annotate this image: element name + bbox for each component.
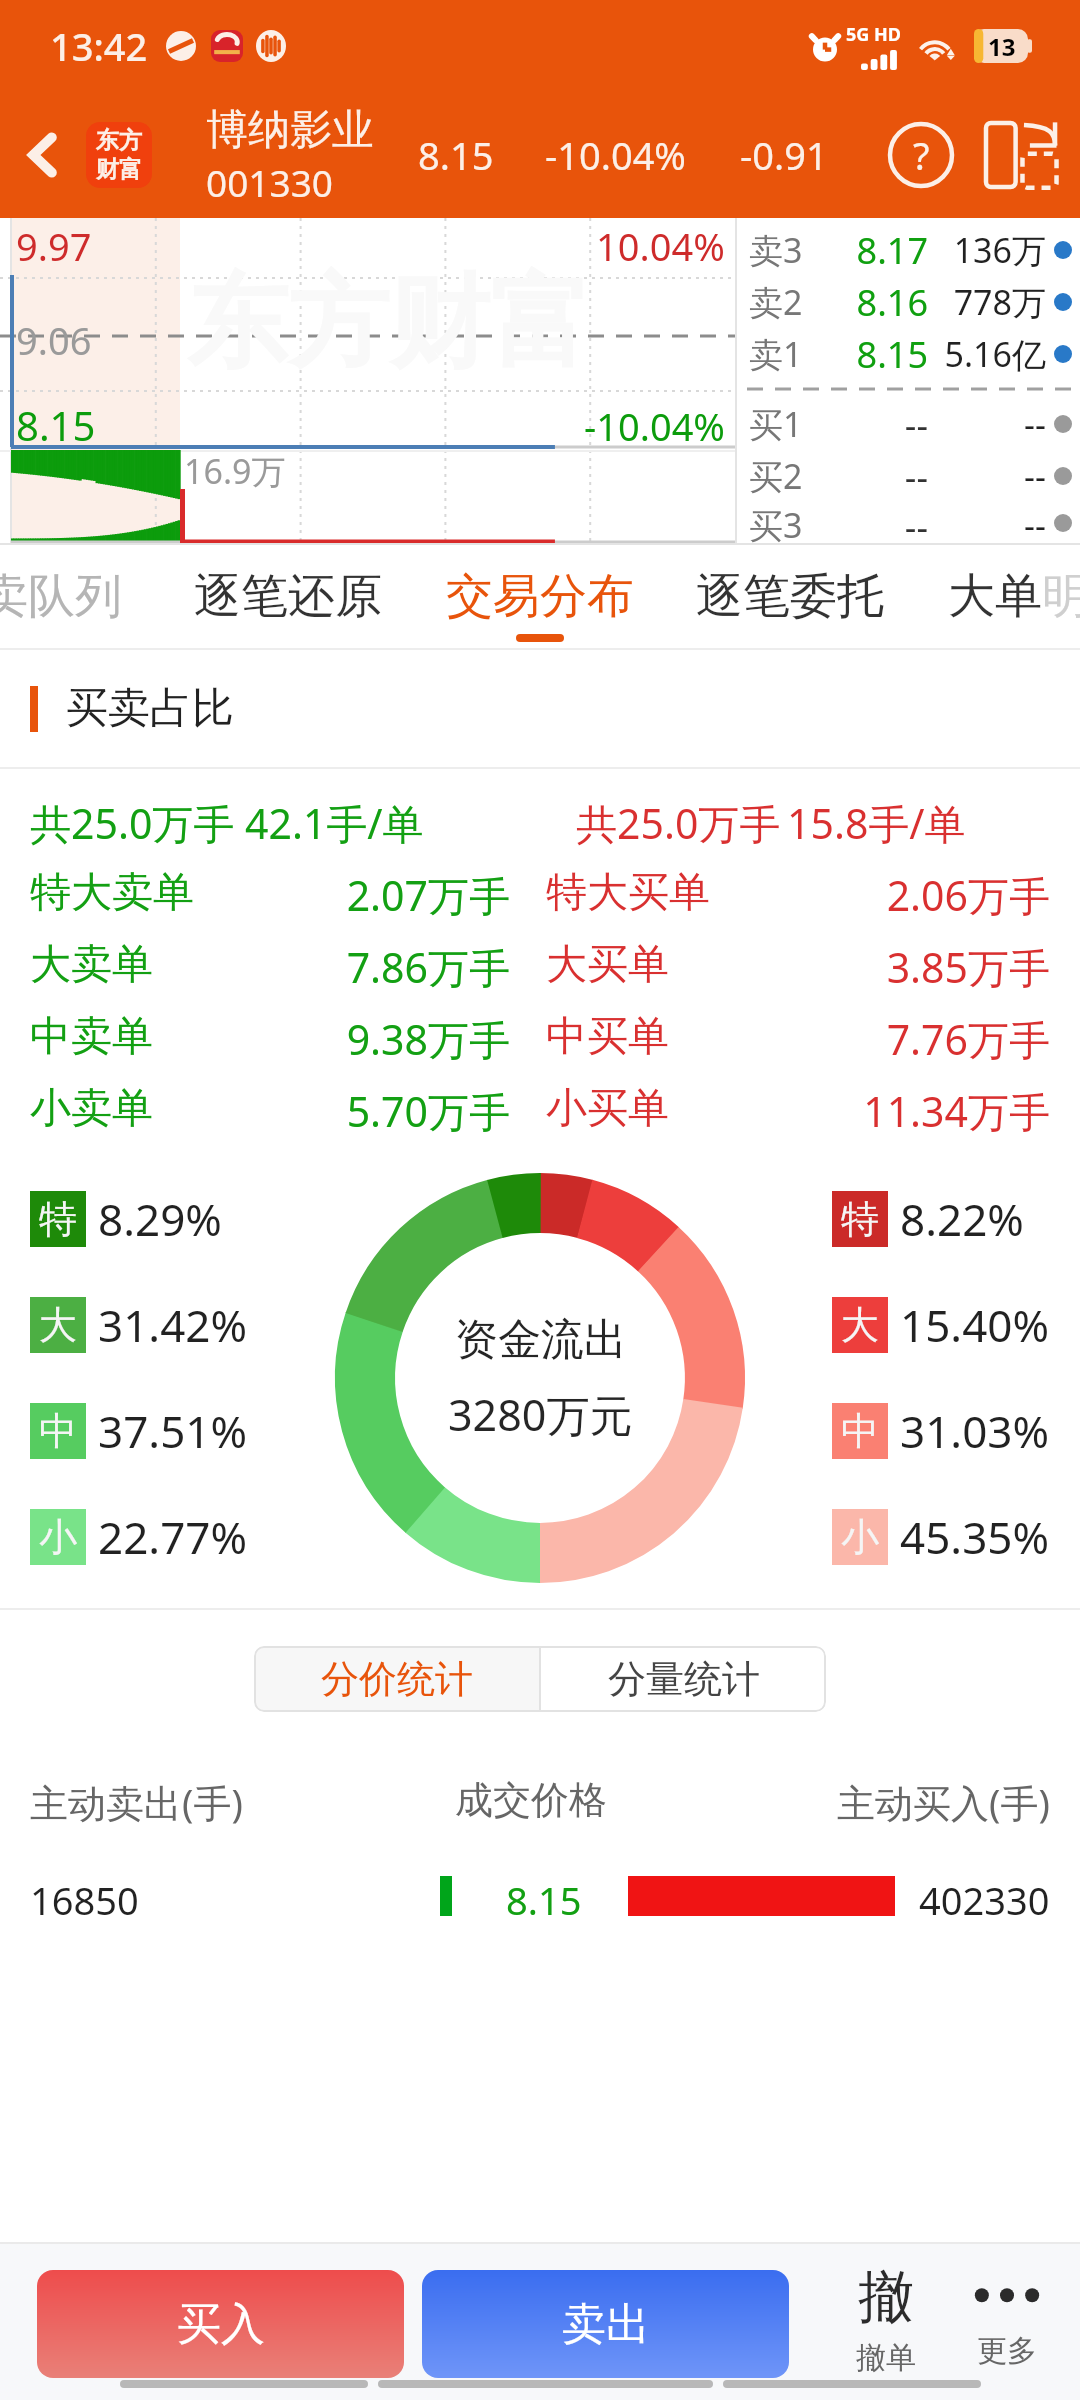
staticText: 8.15 [506, 1874, 582, 1918]
button[interactable]: Help [874, 92, 968, 218]
staticText: 8.16 [803, 278, 928, 327]
staticText: 撤单 [856, 2339, 916, 2377]
staticText: 东方 [96, 126, 142, 155]
staticText: -- [803, 452, 928, 501]
staticText: 大买单 [546, 939, 669, 991]
staticText: -- [803, 502, 928, 543]
staticText: 大单 [948, 567, 1042, 626]
staticText: 买3 [749, 502, 803, 543]
staticText: 小 [841, 1513, 879, 1561]
staticText: 45.35% [900, 1507, 1050, 1567]
staticText: 特大买单 [546, 867, 710, 919]
staticText: 8.15 [418, 129, 545, 181]
staticText: 大卖单 [30, 939, 153, 991]
staticText: 16.9万 [184, 448, 286, 494]
staticText: 共25.0万手 [576, 795, 781, 851]
staticText: 分量统计 [608, 1655, 760, 1703]
button[interactable]: 分量统计 [541, 1646, 826, 1712]
staticText: 001330 [206, 157, 333, 207]
staticText: 特 [841, 1195, 879, 1243]
staticText: 更多 [977, 2332, 1037, 2370]
staticText: 共25.0万手 [30, 795, 235, 851]
staticText: 3.85万手 [669, 939, 1050, 995]
staticText: 15.8手/单 [787, 795, 966, 851]
staticText: 买2 [749, 453, 803, 499]
staticText: 卖3 [749, 227, 803, 273]
staticText: 13 [988, 30, 1016, 63]
staticText: 7.76万手 [669, 1011, 1050, 1067]
staticText: 8.17 [803, 226, 928, 275]
staticText: 买1 [749, 401, 803, 447]
staticText: 中 [841, 1407, 879, 1455]
button[interactable]: More [948, 2262, 1066, 2370]
staticText: 逐笔委托 [696, 567, 884, 626]
staticText: 22.77% [98, 1507, 248, 1567]
staticText: 5G HD [846, 22, 916, 47]
staticText: 8.15 [803, 330, 928, 379]
staticText: 3280万元 [448, 1385, 633, 1444]
button[interactable]: Back [0, 92, 86, 218]
staticText: 42.1手/单 [245, 795, 424, 851]
staticText: -10.04% [584, 400, 725, 452]
staticText: 31.03% [900, 1401, 1050, 1461]
staticText: 8.22% [900, 1189, 1024, 1249]
button[interactable]: 大单 [948, 545, 1080, 648]
staticText: 大 [39, 1301, 77, 1349]
staticText: -10.04% [545, 129, 740, 181]
staticText: 7.86万手 [153, 939, 510, 995]
staticText: 5.16亿 [934, 331, 1046, 377]
button[interactable]: 卖队列 [0, 545, 146, 648]
staticText: 778万 [934, 279, 1046, 325]
staticText: 15.40% [900, 1295, 1050, 1355]
staticText: 小买单 [546, 1083, 669, 1135]
staticText: 8.29% [98, 1189, 222, 1249]
staticText: 11.34万手 [669, 1083, 1050, 1139]
staticText: 卖2 [749, 279, 803, 325]
staticText: -0.91 [740, 129, 828, 181]
staticText: 买卖占比 [66, 682, 234, 735]
button[interactable]: 逐笔还原 [178, 545, 398, 648]
staticText: -- [934, 401, 1046, 447]
staticText: 9.97 [16, 220, 92, 272]
staticText: 卖1 [749, 331, 803, 377]
staticText: 特 [39, 1195, 77, 1243]
staticText: 31.42% [98, 1295, 248, 1355]
button[interactable]: 交易分布 [430, 545, 650, 648]
staticText: 成交价格 [455, 1776, 607, 1824]
staticText: 10.04% [596, 220, 725, 272]
staticText: 东方财富 [187, 260, 591, 387]
staticText: 明 [1042, 567, 1080, 626]
staticText: 博纳影业 [206, 104, 374, 157]
button[interactable]: 逐笔委托 [680, 545, 900, 648]
staticText: 买入 [177, 2297, 265, 2352]
staticText: 13:42 [50, 20, 148, 72]
staticText: 分价统计 [321, 1655, 473, 1703]
staticText: 主动卖出(手) [30, 1776, 243, 1824]
staticText: 136万 [934, 227, 1046, 273]
staticText: 卖出 [562, 2297, 650, 2352]
button[interactable]: 买入 [37, 2270, 404, 2378]
staticText: 402330 [919, 1874, 1050, 1918]
staticText: 小 [39, 1513, 77, 1561]
staticText: 5.70万手 [153, 1083, 510, 1139]
staticText: 财富 [96, 155, 142, 184]
staticText: 交易分布 [446, 567, 634, 626]
staticText: 大 [841, 1301, 879, 1349]
staticText: 9.38万手 [153, 1011, 510, 1067]
staticText: 撤 [858, 2262, 914, 2333]
staticText: 8.15 [16, 398, 96, 452]
staticText: 特大卖单 [30, 867, 194, 919]
staticText: 资金流出 [455, 1313, 627, 1367]
button[interactable]: 卖出 [422, 2270, 789, 2378]
staticText: 2.06万手 [710, 867, 1050, 923]
button[interactable]: Multi window [968, 92, 1074, 218]
staticText: 16850 [30, 1874, 139, 1918]
staticText: 中买单 [546, 1011, 669, 1063]
staticText: 卖队列 [0, 567, 122, 626]
button[interactable]: 分价统计 [254, 1646, 539, 1712]
staticText: 2.07万手 [194, 867, 510, 923]
staticText: 37.51% [98, 1401, 248, 1461]
staticText: 9.06 [16, 314, 92, 366]
staticText: -- [934, 502, 1046, 543]
button[interactable]: 撤 [820, 2262, 952, 2377]
